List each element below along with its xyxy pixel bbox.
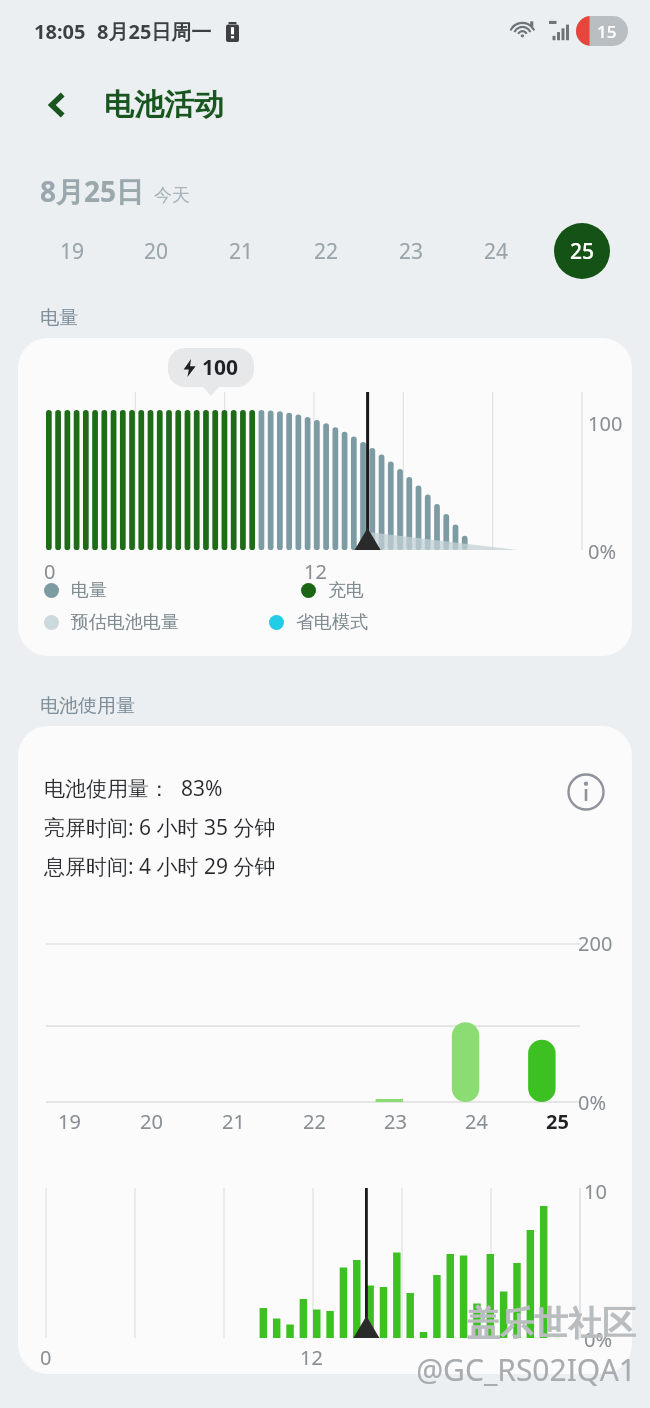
staticText: 100 (588, 410, 623, 437)
staticText: 盖乐世社区 (466, 1302, 636, 1345)
staticText: 电量 (71, 579, 107, 602)
button[interactable]: 19 (30, 210, 114, 292)
staticText: 22 (303, 1108, 326, 1135)
staticText: @GC_RS02IQA1 (416, 1349, 636, 1390)
staticText: 0% (584, 1326, 613, 1353)
staticText: 电池使用量 (40, 694, 135, 718)
staticText: 19 (60, 237, 85, 266)
staticText: 8月25日 (40, 172, 145, 210)
button[interactable]: 100 (18, 338, 632, 656)
button[interactable]: 25 (539, 210, 624, 292)
staticText: 8月25日周一 (97, 18, 212, 45)
staticText: 24 (465, 1108, 488, 1135)
staticText: 19 (58, 1108, 81, 1135)
staticText: 100 (202, 353, 239, 382)
staticText: 12 (304, 558, 327, 585)
button[interactable]: 21 (199, 210, 284, 292)
button[interactable]: 22 (284, 210, 369, 292)
staticText: 0% (578, 1089, 607, 1116)
staticText: 22 (314, 237, 339, 266)
staticText: 息屏时间: 4 小时 29 分钟 (44, 852, 276, 881)
staticText: 21 (229, 237, 254, 266)
staticText: 23 (384, 1108, 407, 1135)
staticText: 25 (570, 237, 595, 266)
staticText: 电池活动 (104, 86, 224, 124)
staticText: 20 (140, 1108, 163, 1135)
staticText: 充电 (328, 579, 364, 602)
staticText: 10 (584, 1178, 607, 1205)
staticText: 20 (144, 237, 169, 266)
staticText: 15 (597, 20, 617, 43)
button[interactable]: 20 (114, 210, 199, 292)
staticText: 亮屏时间: 6 小时 35 分钟 (44, 813, 276, 842)
staticText: 12 (300, 1344, 323, 1371)
staticText: 23 (399, 237, 424, 266)
staticText: 18:05 (34, 18, 86, 45)
staticText: 0 (40, 1344, 52, 1371)
button[interactable]: 电池使用量： 83% (18, 726, 632, 1374)
staticText: 电池使用量： 83% (44, 774, 223, 803)
button[interactable]: 24 (454, 210, 539, 292)
staticText: 0% (588, 538, 617, 565)
staticText: 预估电池电量 (71, 611, 179, 634)
staticText: 200 (578, 930, 613, 957)
staticText: 21 (222, 1108, 245, 1135)
staticText: 电量 (40, 306, 78, 330)
staticText: 25 (546, 1108, 569, 1135)
button[interactable]: 返回 (30, 77, 86, 133)
staticText: 0 (44, 558, 56, 585)
button[interactable]: 信息 (562, 768, 610, 816)
staticText: 省电模式 (296, 611, 368, 634)
button[interactable]: 23 (369, 210, 454, 292)
staticText: 24 (484, 237, 509, 266)
staticText: 今天 (154, 184, 190, 207)
